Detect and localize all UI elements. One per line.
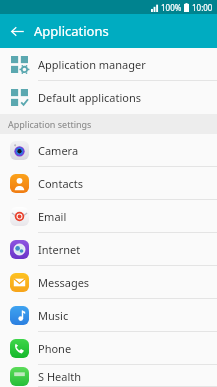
staticText: Messages — [38, 275, 90, 290]
staticText: Phone — [38, 341, 72, 356]
staticText: Contacts — [38, 176, 84, 191]
button[interactable]: Back — [0, 14, 34, 48]
staticText: Default applications — [38, 90, 142, 105]
button[interactable]: Email — [0, 200, 217, 233]
staticText: Email — [38, 209, 67, 224]
button[interactable]: Internet — [0, 233, 217, 266]
staticText: Application manager — [38, 57, 146, 72]
button[interactable]: S Health — [0, 365, 217, 387]
button[interactable]: Phone — [0, 332, 217, 365]
button[interactable]: Messages — [0, 266, 217, 299]
staticText: 100% — [161, 2, 182, 13]
button[interactable]: Camera — [0, 134, 217, 167]
button[interactable]: Contacts — [0, 167, 217, 200]
button[interactable]: Default applications — [0, 81, 217, 114]
button[interactable]: Application manager — [0, 48, 217, 81]
staticText: 10:00 — [192, 2, 213, 13]
staticText: Applications — [34, 22, 109, 40]
staticText: S Health — [38, 369, 82, 384]
staticText: Music — [38, 308, 69, 323]
button[interactable]: Music — [0, 299, 217, 332]
staticText: Internet — [38, 242, 81, 257]
staticText: Application settings — [8, 118, 92, 130]
staticText: Camera — [38, 143, 79, 158]
